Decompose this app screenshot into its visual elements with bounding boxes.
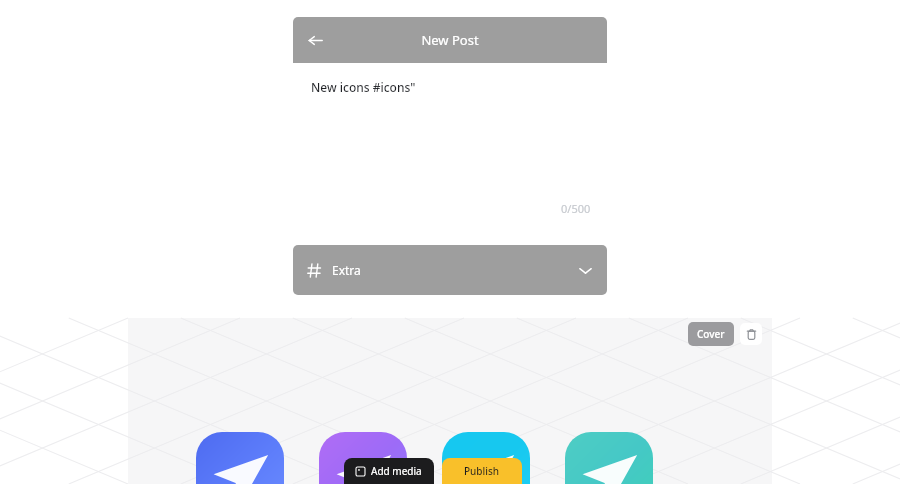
staticText: New icons #icons" (311, 79, 416, 95)
staticText: 0/500 (561, 201, 591, 216)
button[interactable]: Add media (344, 458, 434, 484)
button[interactable]: Extra (293, 245, 607, 295)
button[interactable]: Cover (688, 322, 734, 346)
button[interactable]: Delete (740, 323, 762, 345)
button[interactable]: App icon (442, 432, 530, 484)
staticText: Publish (464, 464, 500, 478)
button[interactable]: App icon (319, 432, 407, 484)
button[interactable]: New icons #icons" (293, 63, 607, 238)
button[interactable]: Back (301, 26, 329, 54)
button[interactable]: App icon (565, 432, 653, 484)
button[interactable]: App icon (196, 432, 284, 484)
staticText: Extra (332, 262, 361, 278)
staticText: Add media (371, 464, 422, 478)
staticText: New Post (421, 31, 479, 49)
staticText: Cover (697, 327, 725, 341)
button[interactable]: Publish (442, 458, 522, 484)
